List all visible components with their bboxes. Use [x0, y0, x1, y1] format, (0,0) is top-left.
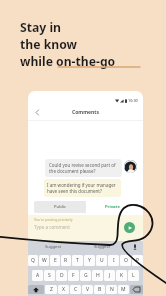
button[interactable]: Public [34, 201, 86, 213]
staticText: Could you revise second part of the docu… [49, 162, 118, 174]
staticText: Y [88, 257, 91, 264]
button[interactable]: V [82, 285, 93, 294]
staticText: B [98, 286, 102, 293]
staticText: F [72, 272, 75, 279]
button[interactable]: H [92, 270, 103, 281]
staticText: O [124, 257, 128, 264]
staticText: V [86, 286, 90, 293]
button[interactable]: W [39, 255, 49, 266]
staticText: I [113, 257, 115, 264]
staticText: L [132, 272, 135, 279]
button[interactable]: C [70, 285, 81, 294]
button[interactable]: N [106, 285, 117, 294]
staticText: S [48, 272, 51, 279]
button[interactable]: Could you revise second part of the docu… [45, 159, 122, 177]
staticText: Suggest [94, 244, 110, 250]
button[interactable]: Private [86, 201, 138, 213]
staticText: the know [20, 36, 77, 53]
staticText: T [76, 257, 79, 264]
button[interactable]: P [132, 255, 143, 266]
staticText: Suggest [45, 244, 61, 250]
staticText: G [84, 272, 88, 279]
button[interactable]: Shift [28, 285, 44, 294]
button[interactable]: S [44, 270, 55, 281]
button[interactable]: R [61, 255, 71, 266]
staticText: You're posting privately [34, 217, 73, 222]
staticText: H [96, 272, 100, 279]
staticText: R [64, 257, 68, 264]
staticText: C [74, 286, 78, 293]
staticText: 10:30 [128, 98, 138, 103]
button[interactable]: O [120, 255, 131, 266]
staticText: Private [105, 204, 120, 210]
button[interactable]: F [68, 270, 79, 281]
staticText: while on-the-go [20, 53, 116, 70]
staticText: M [121, 286, 126, 293]
staticText: Public [54, 204, 67, 210]
staticText: W [42, 257, 47, 264]
staticText: Comments [72, 109, 100, 116]
staticText: A [36, 272, 40, 279]
staticText: J [109, 272, 111, 279]
button[interactable]: Send [124, 222, 135, 233]
button[interactable]: G [80, 270, 91, 281]
staticText: Type a comment [34, 224, 70, 230]
button[interactable]: I am wondering if your manager have seen… [44, 179, 121, 197]
staticText: U [100, 257, 104, 264]
button[interactable]: Y [84, 255, 95, 266]
staticText: P [136, 257, 140, 264]
button[interactable]: E [50, 255, 60, 266]
staticText: Q [31, 257, 35, 264]
button[interactable]: U [96, 255, 107, 266]
button[interactable]: Q [28, 255, 38, 266]
button[interactable]: Z [45, 285, 57, 294]
button[interactable]: B [94, 285, 105, 294]
button[interactable]: X [58, 285, 69, 294]
staticText: X [62, 286, 65, 293]
button[interactable]: K [116, 270, 127, 281]
staticText: K [120, 272, 124, 279]
button[interactable]: T [72, 255, 83, 266]
button[interactable]: J [104, 270, 115, 281]
button[interactable]: A [32, 270, 43, 281]
staticText: Z [50, 286, 53, 293]
button[interactable]: D [56, 270, 67, 281]
staticText: D [60, 272, 64, 279]
staticText: I am wondering if your manager have seen… [47, 182, 118, 194]
button[interactable]: I [108, 255, 119, 266]
staticText: N [110, 286, 114, 293]
staticText: Stay in [20, 19, 61, 36]
button[interactable]: L [128, 270, 139, 281]
button[interactable]: Backspace [130, 285, 143, 294]
staticText: E [54, 257, 57, 264]
button[interactable]: M [118, 285, 129, 294]
button[interactable]: Back [33, 108, 42, 117]
